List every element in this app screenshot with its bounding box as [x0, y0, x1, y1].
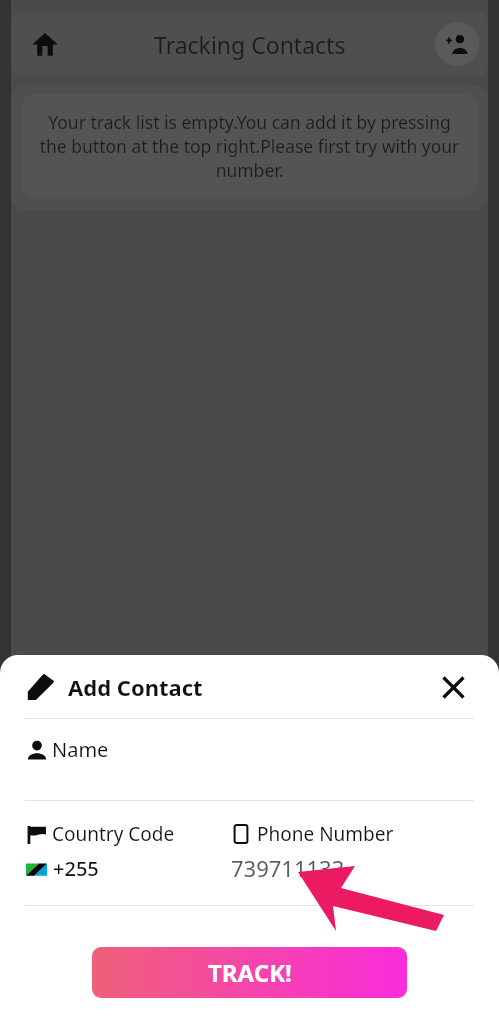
button[interactable]: Close: [433, 667, 473, 707]
button[interactable]: Home: [21, 20, 69, 68]
staticText: Your track list is empty.You can add it …: [34, 110, 465, 182]
button[interactable]: Phone Number: [231, 821, 394, 883]
button[interactable]: Add contact: [435, 22, 479, 66]
staticText: TRACK!: [208, 956, 292, 989]
staticText: Country Code: [52, 821, 175, 847]
staticText: Name: [52, 736, 109, 763]
staticText: +255: [53, 855, 99, 882]
button[interactable]: TRACK!: [92, 947, 407, 998]
staticText: Tracking Contacts: [154, 29, 346, 60]
button[interactable]: Name: [0, 719, 499, 800]
staticText: Phone Number: [257, 821, 394, 847]
staticText: Add Contact: [68, 672, 203, 702]
button[interactable]: Country Code: [26, 821, 231, 882]
staticText: 739711133: [231, 853, 345, 883]
